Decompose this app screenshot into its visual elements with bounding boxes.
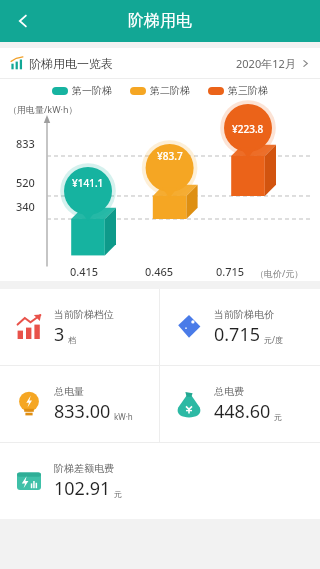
- staticText: 阶梯差额电费: [54, 462, 114, 475]
- staticText: 448.60: [214, 399, 271, 424]
- button[interactable]: 阶梯差额电费: [0, 443, 160, 519]
- staticText: 520: [16, 175, 35, 190]
- staticText: 当前阶梯电价: [214, 308, 274, 321]
- staticText: 当前阶梯档位: [54, 308, 114, 321]
- staticText: 档: [68, 335, 76, 345]
- staticText: 总电量: [54, 385, 84, 398]
- staticText: ¥223.8: [232, 122, 264, 136]
- button[interactable]: 总电量: [0, 366, 159, 442]
- staticText: 第二阶梯: [150, 84, 190, 97]
- staticText: 总电费: [214, 385, 244, 398]
- button[interactable]: 总电费: [160, 366, 320, 442]
- staticText: 元: [274, 412, 282, 422]
- staticText: 102.91: [54, 476, 111, 501]
- staticText: kW·h: [114, 411, 133, 422]
- staticText: 0.465: [134, 264, 184, 279]
- staticText: 第三阶梯: [228, 84, 268, 97]
- staticText: 340: [16, 199, 35, 214]
- button[interactable]: 阶梯用电一览表: [0, 48, 320, 78]
- staticText: （用电量/kW·h）: [8, 103, 78, 115]
- staticText: ¥141.1: [72, 176, 104, 190]
- staticText: 2020年12月: [236, 56, 296, 71]
- staticText: 0.715: [205, 264, 255, 279]
- button[interactable]: 当前阶梯电价: [160, 289, 320, 365]
- staticText: 833.00: [54, 399, 111, 424]
- staticText: 0.415: [59, 264, 109, 279]
- staticText: 833: [16, 136, 35, 151]
- staticText: （电价/元）: [255, 267, 320, 279]
- staticText: ¥83.7: [157, 149, 183, 163]
- staticText: 元/度: [264, 334, 283, 345]
- staticText: 3: [54, 322, 65, 347]
- staticText: 阶梯用电: [128, 11, 192, 31]
- staticText: 阶梯用电一览表: [29, 56, 113, 71]
- button[interactable]: Back: [4, 2, 42, 40]
- staticText: 元: [114, 489, 122, 499]
- staticText: 第一阶梯: [72, 84, 112, 97]
- staticText: 0.715: [214, 322, 261, 347]
- button[interactable]: 当前阶梯档位: [0, 289, 159, 365]
